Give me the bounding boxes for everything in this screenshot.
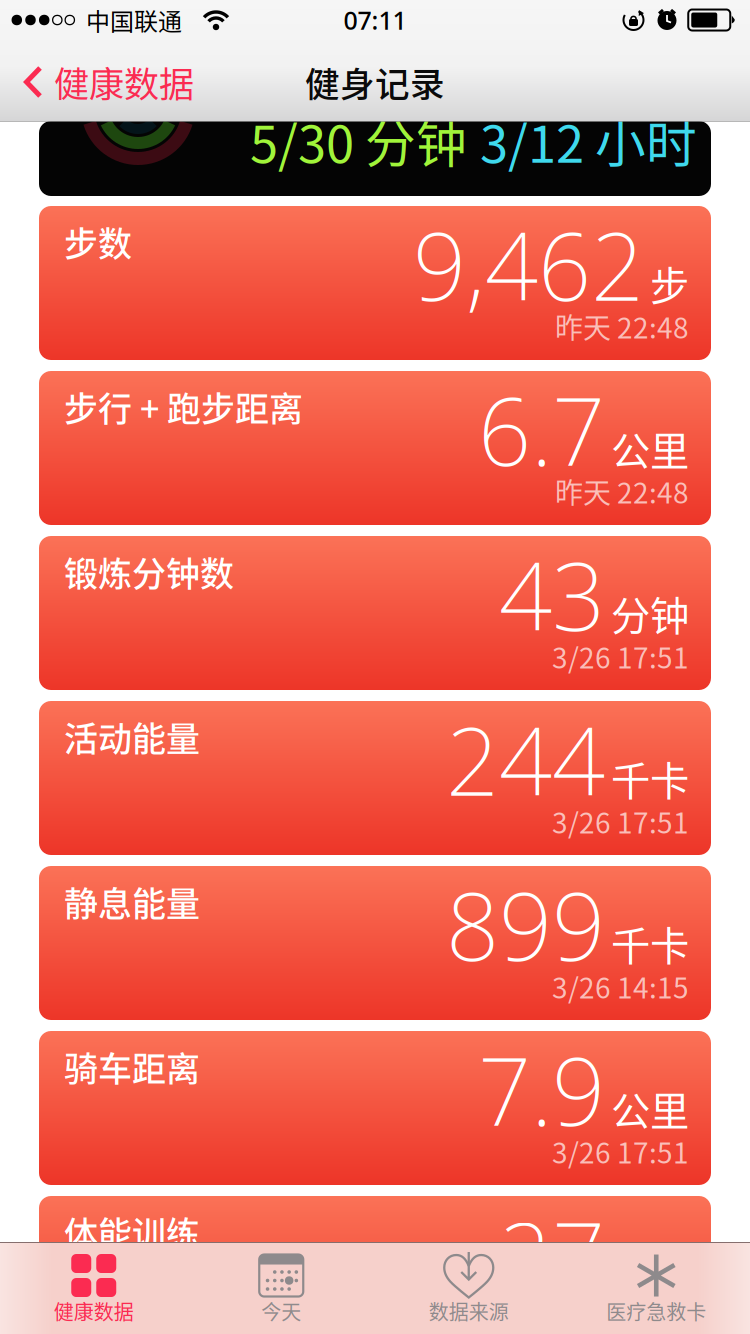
staticText: 07:11 [343,3,406,37]
staticText: 健康数据 [54,57,194,107]
button[interactable]: 今天 [187,1243,375,1333]
staticText: 公里 [611,1080,689,1137]
staticText: 分钟 [611,585,689,642]
staticText: 千卡 [611,750,689,807]
staticText: 数据来源 [429,1296,509,1325]
staticText: 步行 + 跑步距离 [64,382,303,431]
button[interactable]: 锻炼分钟数 [39,536,711,690]
staticText: 899 [446,861,605,988]
staticText: 活动能量 [64,712,200,761]
staticText: 5/30 分钟 [250,104,467,177]
button[interactable]: 体能训练 [39,1196,711,1242]
staticText: 公里 [611,420,689,477]
staticText: 昨天 22:48 [555,306,689,347]
staticText: 3/12 小时 [480,104,697,177]
staticText: 静息能量 [64,877,200,926]
staticText: 6.7 [478,366,605,493]
staticText: 千卡 [611,915,689,972]
staticText: 244 [446,696,605,823]
staticText: 步数 [64,217,132,266]
staticText: 43 [499,531,605,658]
button[interactable]: 步数 [39,206,711,360]
button[interactable]: 数据来源 [375,1243,562,1333]
button[interactable]: 医疗急救卡 [562,1243,750,1333]
button[interactable]: 骑车距离 [39,1031,711,1185]
staticText: 7.9 [478,1026,605,1153]
button[interactable]: 静息能量 [39,866,711,1020]
staticText: 3/26 14:15 [552,966,689,1007]
button[interactable]: 健康数据 [0,1243,187,1333]
staticText: 3/26 17:51 [552,1131,689,1172]
staticText: 中国联通 [86,3,182,37]
staticText: 27 [499,1191,605,1318]
staticText: 昨天 22:48 [555,471,689,512]
staticText: 骑车距离 [64,1042,200,1091]
button[interactable]: 健康数据 [24,57,194,107]
staticText: 步 [650,255,689,312]
staticText: 9,462 [413,201,644,328]
button[interactable]: 5/30 分钟 [39,121,711,196]
staticText: 健身记录 [305,57,445,107]
staticText: 3/26 17:51 [552,636,689,677]
staticText: 分钟 [611,1245,689,1302]
button[interactable]: 步行 + 跑步距离 [39,371,711,525]
staticText: 健康数据 [54,1296,134,1325]
staticText: 今天 [261,1296,301,1325]
staticText: 医疗急救卡 [606,1296,706,1325]
staticText: 锻炼分钟数 [64,547,234,596]
button[interactable]: 活动能量 [39,701,711,855]
staticText: 3/26 17:51 [552,1296,689,1334]
staticText: 3/26 17:51 [552,801,689,842]
staticText: 体能训练 [64,1207,200,1256]
